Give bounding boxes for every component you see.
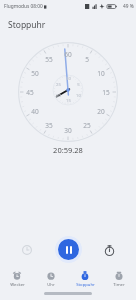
- staticText: 49 %: [123, 3, 134, 10]
- button[interactable]: Uhr: [34, 269, 68, 290]
- staticText: 15: [66, 98, 71, 104]
- button[interactable]: Pause: [55, 236, 82, 263]
- staticText: 55: [45, 55, 53, 63]
- staticText: 60: [64, 50, 72, 58]
- staticText: 25: [56, 82, 61, 88]
- staticText: 30: [66, 76, 71, 82]
- staticText: 25: [83, 121, 91, 129]
- staticText: 5: [77, 82, 80, 88]
- staticText: 20: [97, 107, 105, 115]
- staticText: Stoppuhr: [76, 282, 95, 288]
- button[interactable]: Runde: [17, 240, 37, 260]
- staticText: Flugmodus 08:00: [4, 3, 43, 10]
- staticText: Timer: [113, 282, 125, 288]
- staticText: 15: [102, 88, 110, 96]
- staticText: 10: [76, 93, 81, 99]
- button[interactable]: Timer: [102, 269, 136, 290]
- staticText: 30: [64, 126, 72, 134]
- button[interactable]: Stoppuhr zuruecksetzen: [99, 240, 119, 260]
- staticText: Wecker: [10, 282, 25, 288]
- staticText: 40: [31, 107, 39, 115]
- staticText: 50: [31, 69, 39, 77]
- button[interactable]: Stoppuhr: [68, 269, 102, 290]
- staticText: 5: [85, 55, 89, 63]
- staticText: Stoppuhr: [8, 19, 46, 31]
- staticText: 20: [56, 93, 61, 99]
- staticText: 35: [45, 121, 53, 129]
- staticText: Uhr: [47, 282, 55, 288]
- staticText: 45: [26, 88, 34, 96]
- button[interactable]: Wecker: [0, 269, 34, 290]
- staticText: 10: [97, 69, 105, 77]
- staticText: 20:59.28: [53, 145, 83, 155]
